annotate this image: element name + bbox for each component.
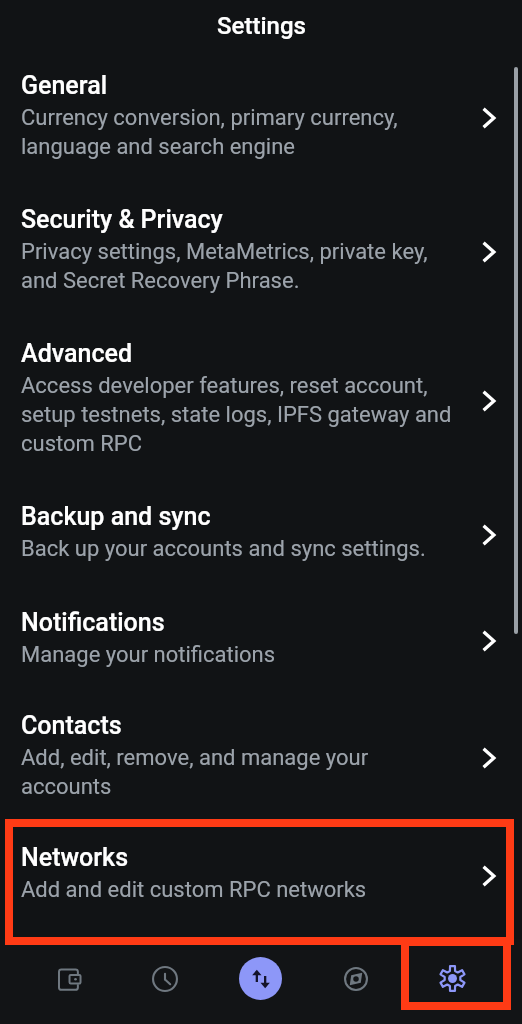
- staticText: General: [21, 71, 108, 100]
- staticText: Advanced: [21, 339, 133, 368]
- staticText: Notifications: [21, 608, 165, 637]
- button[interactable]: Activity: [117, 939, 212, 1018]
- button[interactable]: General: [0, 48, 522, 182]
- button[interactable]: Settings: [404, 939, 500, 1018]
- staticText: Security & Privacy: [21, 205, 223, 234]
- button[interactable]: Swap: [212, 939, 308, 1018]
- button[interactable]: Advanced: [0, 316, 522, 479]
- staticText: Currency conversion, primary currency, l…: [21, 105, 457, 159]
- button[interactable]: Networks: [0, 822, 522, 926]
- staticText: Add and edit custom RPC networks: [21, 877, 367, 903]
- staticText: Add, edit, remove, and manage your accou…: [21, 745, 457, 799]
- staticText: Access developer features, reset account…: [21, 373, 457, 456]
- staticText: Back up your accounts and sync settings.: [21, 536, 426, 562]
- staticText: Contacts: [21, 711, 122, 740]
- button[interactable]: Backup and sync: [0, 479, 522, 585]
- staticText: Manage your notifications: [21, 642, 276, 668]
- button[interactable]: Wallet: [22, 939, 117, 1018]
- staticText: Backup and sync: [21, 502, 211, 531]
- staticText: Settings: [217, 12, 306, 40]
- staticText: Privacy settings, MetaMetrics, private k…: [21, 239, 457, 293]
- button[interactable]: Security & Privacy: [0, 182, 522, 316]
- button[interactable]: Contacts: [0, 691, 522, 822]
- staticText: Networks: [21, 843, 129, 872]
- button[interactable]: Browser: [308, 939, 404, 1018]
- button[interactable]: Notifications: [0, 585, 522, 691]
